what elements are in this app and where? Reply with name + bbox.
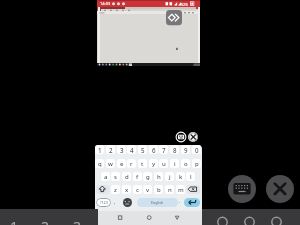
- button[interactable]: [123, 198, 132, 207]
- button[interactable]: u: [159, 159, 168, 168]
- staticText: 62%: [181, 2, 189, 7]
- staticText: g: [146, 173, 150, 181]
- button[interactable]: 8: [170, 145, 179, 154]
- button[interactable]: g: [143, 172, 152, 181]
- button[interactable]: 0: [192, 145, 201, 154]
- staticText: q: [98, 160, 102, 168]
- button[interactable]: 5: [138, 145, 147, 154]
- button[interactable]: p: [192, 159, 201, 168]
- button[interactable]: [228, 175, 256, 203]
- button[interactable]: 3: [117, 145, 126, 154]
- button[interactable]: i: [170, 159, 179, 168]
- staticText: y: [152, 160, 156, 168]
- staticText: ,: [114, 199, 116, 206]
- staticText: j: [169, 173, 171, 181]
- staticText: h: [157, 173, 161, 181]
- button[interactable]: v: [143, 185, 152, 194]
- button[interactable]: [184, 198, 200, 207]
- staticText: b: [157, 186, 161, 194]
- button[interactable]: a: [101, 172, 110, 181]
- staticText: r: [130, 160, 133, 168]
- button[interactable]: w: [106, 159, 115, 168]
- staticText: o: [184, 160, 188, 168]
- button[interactable]: x: [122, 185, 131, 194]
- button[interactable]: h: [154, 172, 163, 181]
- staticText: 1: [98, 146, 102, 154]
- button[interactable]: b: [154, 185, 163, 194]
- button[interactable]: t: [138, 159, 147, 168]
- button[interactable]: o: [181, 159, 190, 168]
- button[interactable]: y: [149, 159, 158, 168]
- staticText: n: [168, 186, 172, 194]
- button[interactable]: r: [127, 159, 136, 168]
- staticText: ?123: [100, 200, 108, 205]
- button[interactable]: 4: [127, 145, 136, 154]
- button[interactable]: k: [176, 172, 185, 181]
- staticText: c: [136, 186, 139, 194]
- staticText: f: [136, 173, 139, 181]
- button[interactable]: [96, 185, 109, 194]
- button[interactable]: q: [95, 159, 104, 168]
- button[interactable]: m: [176, 185, 185, 194]
- button[interactable]: ?123: [96, 198, 111, 207]
- button[interactable]: s: [111, 172, 120, 181]
- staticText: p: [195, 160, 199, 168]
- button[interactable]: n: [165, 185, 174, 194]
- staticText: a: [104, 173, 108, 181]
- button[interactable]: 7: [159, 145, 168, 154]
- button[interactable]: z: [111, 185, 120, 194]
- staticText: 6: [152, 146, 156, 154]
- button[interactable]: 6: [149, 145, 158, 154]
- staticText: k: [179, 173, 183, 181]
- button[interactable]: English: [137, 198, 178, 207]
- button[interactable]: 9: [181, 145, 190, 154]
- staticText: 2: [109, 146, 113, 154]
- staticText: e: [120, 160, 124, 168]
- button[interactable]: [176, 132, 186, 142]
- button[interactable]: f: [133, 172, 142, 181]
- staticText: .: [179, 198, 181, 205]
- button[interactable]: 1: [95, 145, 104, 154]
- button[interactable]: e: [117, 159, 126, 168]
- staticText: 3: [120, 146, 124, 154]
- staticText: v: [146, 186, 150, 194]
- staticText: 14:03: [100, 1, 111, 6]
- staticText: 0: [195, 146, 199, 154]
- staticText: 7: [162, 146, 166, 154]
- staticText: m: [178, 186, 184, 194]
- staticText: x: [125, 186, 129, 194]
- staticText: t: [141, 160, 144, 168]
- button[interactable]: [188, 132, 198, 142]
- button[interactable]: j: [165, 172, 174, 181]
- button[interactable]: 2: [106, 145, 115, 154]
- button[interactable]: d: [122, 172, 131, 181]
- staticText: 1: [10, 217, 19, 225]
- staticText: i: [174, 160, 176, 168]
- staticText: 3: [73, 217, 82, 225]
- staticText: 5: [141, 146, 145, 154]
- button[interactable]: c: [133, 185, 142, 194]
- button[interactable]: l: [186, 172, 195, 181]
- staticText: u: [162, 160, 166, 168]
- staticText: 9: [184, 146, 188, 154]
- staticText: English: [151, 200, 164, 205]
- staticText: d: [125, 173, 129, 181]
- staticText: 2: [41, 217, 50, 225]
- staticText: w: [108, 160, 113, 168]
- staticText: 8: [173, 146, 177, 154]
- staticText: 4: [130, 146, 134, 154]
- staticText: z: [114, 186, 117, 194]
- button[interactable]: [187, 185, 200, 194]
- staticText: l: [190, 173, 192, 181]
- button[interactable]: [266, 175, 294, 203]
- staticText: s: [114, 173, 117, 181]
